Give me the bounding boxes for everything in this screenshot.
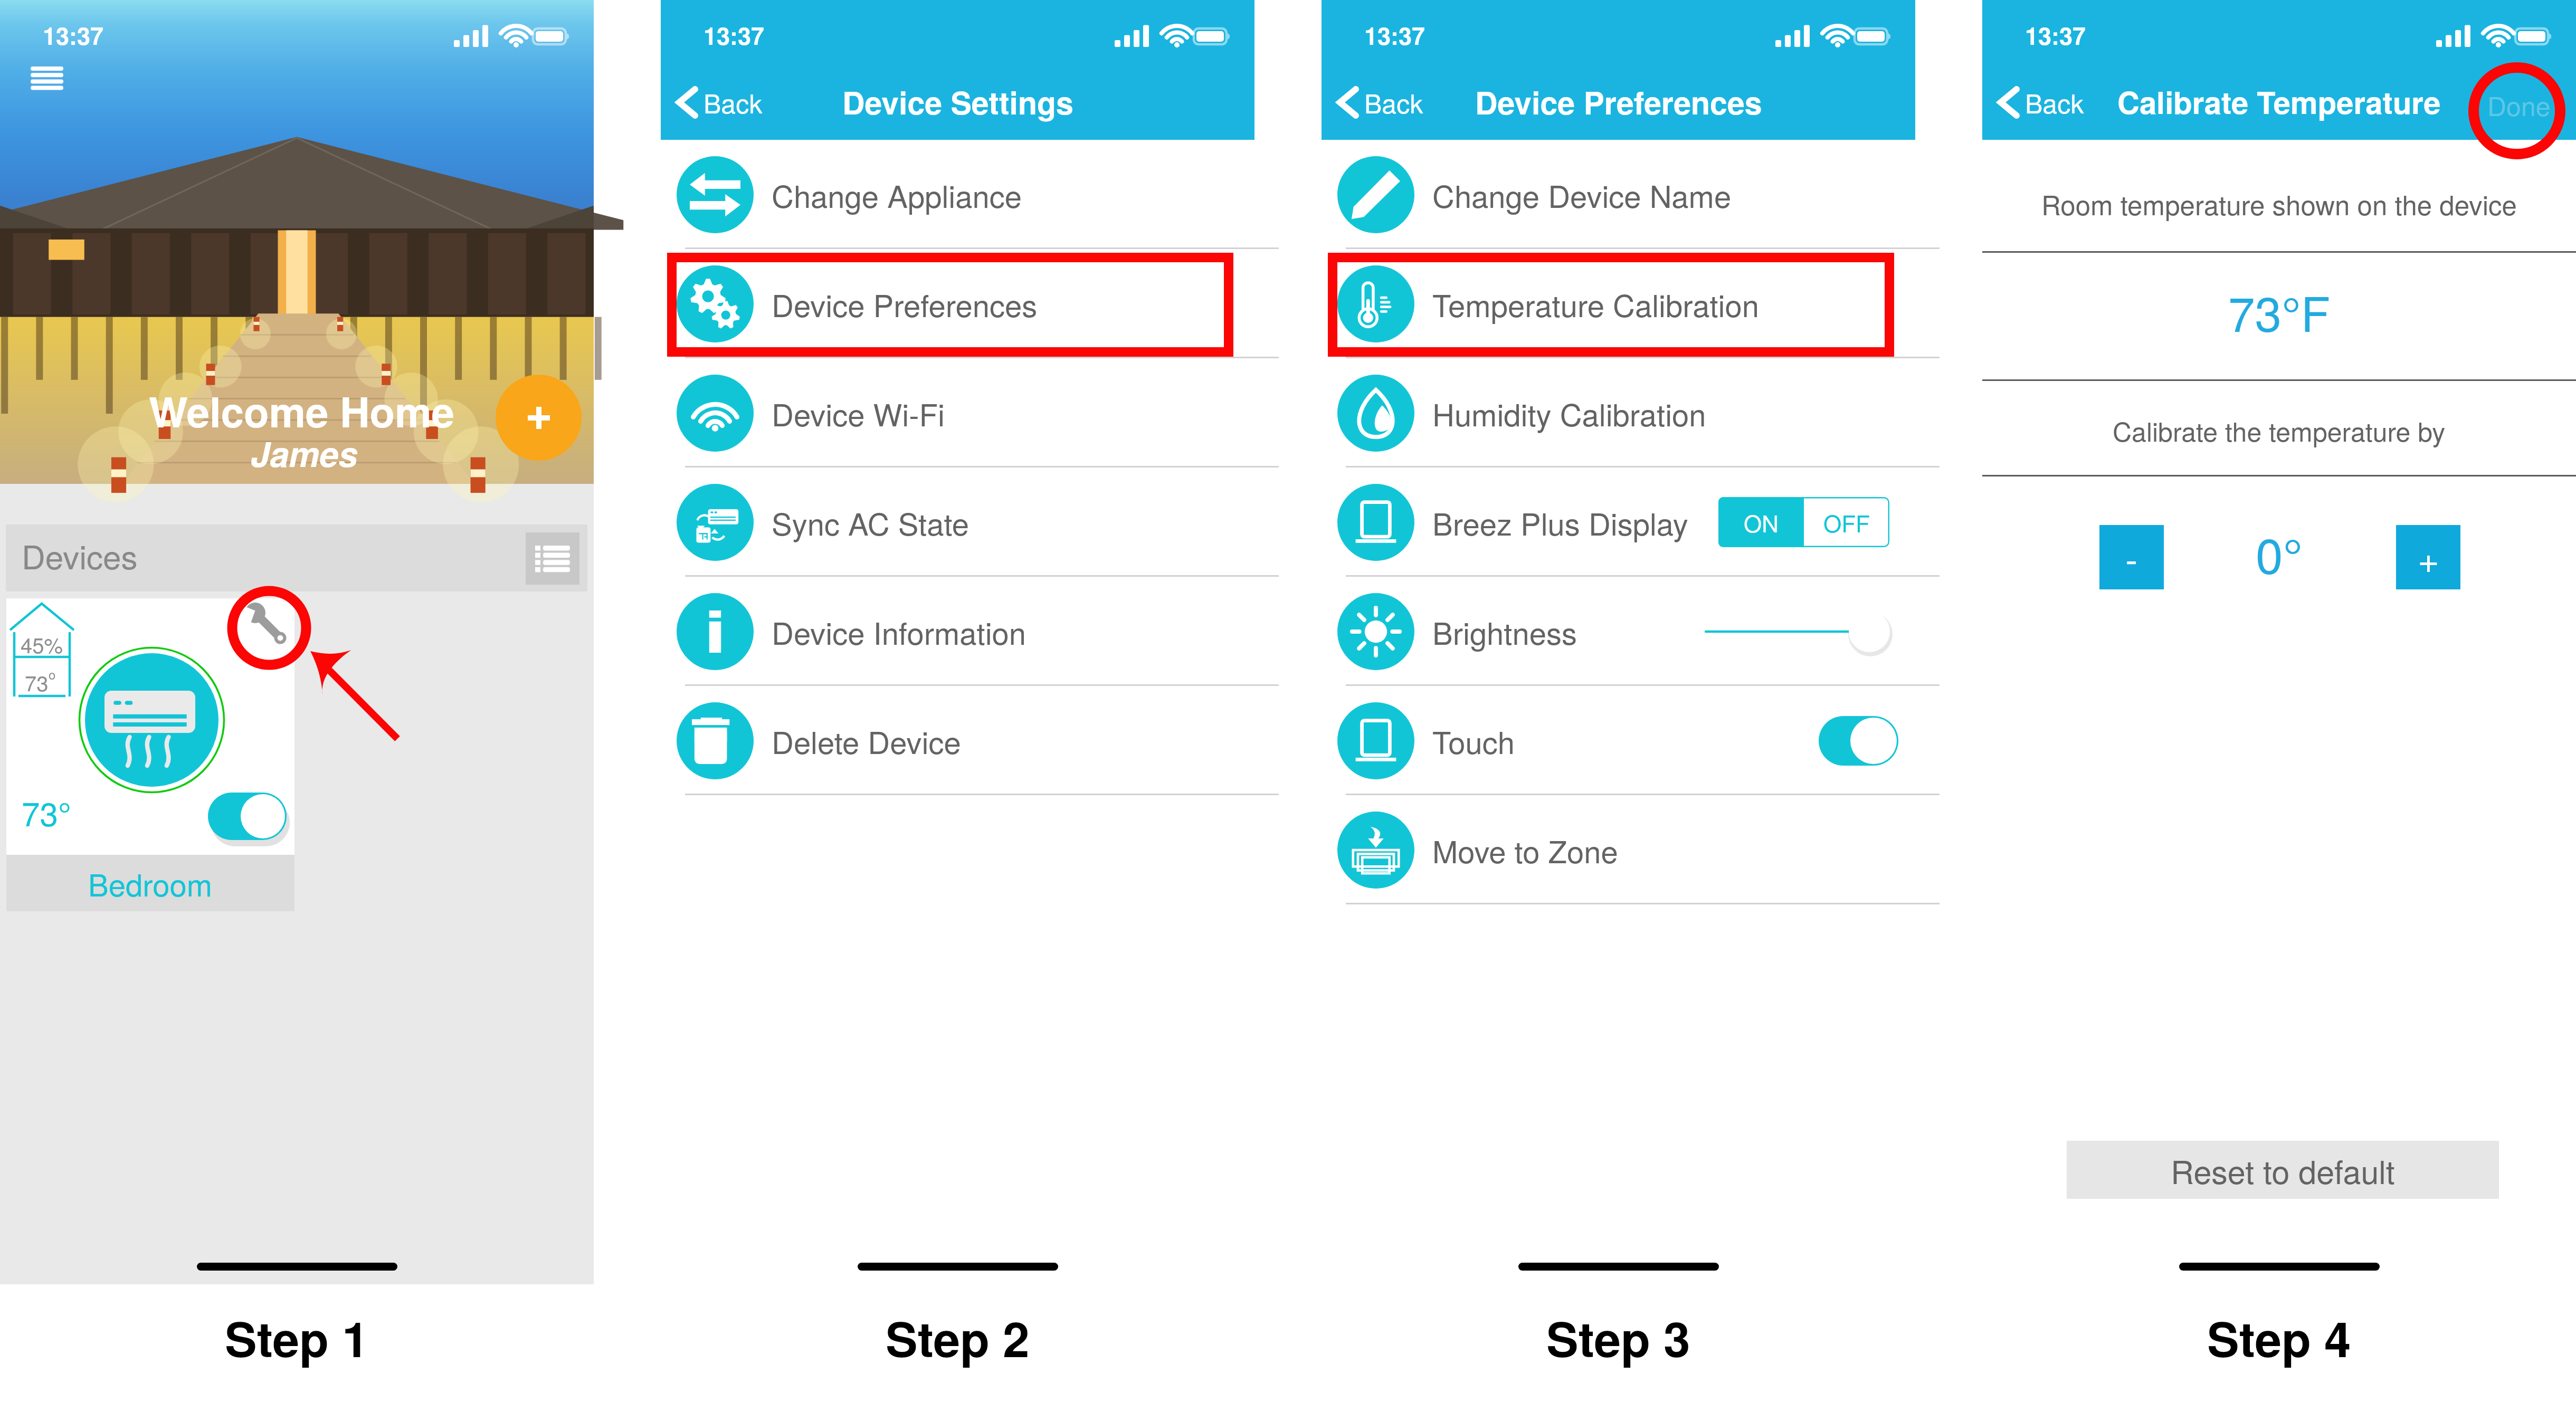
staticText: Change Appliance [772,173,1022,216]
staticText: Welcome Home [149,381,454,440]
staticText: Done [2487,86,2551,124]
staticText: OFF [1823,505,1870,539]
button[interactable]: Breez Plus Display [1322,468,1915,577]
staticText: Device Preferences [772,282,1038,326]
staticText: 73 [25,667,49,693]
button[interactable]: List view [526,532,579,585]
button[interactable]: Change Appliance [661,140,1254,249]
button[interactable]: Touch toggle [1819,716,1898,766]
button[interactable]: Touch [1322,686,1915,795]
button[interactable]: Back [1337,79,1423,126]
staticText: Calibrate Temperature [2117,80,2441,123]
staticText: Step 3 [1546,1303,1690,1372]
button[interactable]: Bedroom [6,855,294,911]
staticText: Move to Zone [1432,828,1618,872]
button[interactable]: Back [676,79,763,126]
staticText: Temperature Calibration [1432,282,1759,326]
button[interactable]: Done [2472,80,2567,130]
staticText: Calibrate the temperature by [2113,412,2446,450]
staticText: Step 2 [886,1303,1030,1372]
staticText: Room temperature shown on the device [2041,184,2517,223]
staticText: Change Device Name [1432,173,1732,216]
staticText: James [251,428,358,478]
staticText: ON [1744,505,1779,539]
other: Menu [31,66,64,91]
staticText: Devices [22,532,138,579]
button[interactable]: Humidity Calibration [1322,358,1915,468]
button[interactable]: Decrease [2099,525,2164,589]
staticText: Device Preferences [1475,80,1762,124]
button[interactable]: ON [1718,497,1889,547]
button[interactable]: Increase [2396,525,2460,589]
staticText: Sync AC State [772,500,969,544]
staticText: Device Settings [842,80,1073,124]
staticText: Brightness [1432,609,1577,653]
button[interactable]: Move to Zone [1322,795,1915,904]
button[interactable]: Add device [496,375,582,461]
staticText: Delete Device [772,719,961,762]
button[interactable]: 45% [6,598,294,855]
staticText: 0° [2256,518,2303,582]
button[interactable]: Delete Device [661,686,1254,795]
button[interactable]: Reset to default [2067,1141,2499,1199]
button[interactable]: Power toggle [208,793,287,840]
staticText: Device Information [772,609,1026,653]
button[interactable]: Device Information [661,577,1254,686]
button[interactable]: Temperature Calibration [1322,249,1915,358]
staticText: Bedroom [88,861,213,905]
staticText: Reset to default [2171,1147,2395,1193]
staticText: 73° [22,789,71,836]
button[interactable]: Device Wi-Fi [661,358,1254,468]
button[interactable]: Sync AC State [661,468,1254,577]
staticText: 45% [21,629,63,655]
staticText: - [2125,531,2138,584]
button[interactable]: Device Preferences [661,249,1254,358]
staticText: 13:37 [43,18,104,52]
staticText: Step 4 [2207,1303,2351,1372]
staticText: 13:37 [1364,18,1425,52]
staticText: 13:37 [2025,18,2086,52]
staticText: + [2418,531,2439,584]
staticText: 73°F [2228,277,2331,346]
button[interactable]: Change Device Name [1322,140,1915,249]
staticText: Step 1 [225,1303,369,1372]
staticText: Back [1364,83,1423,121]
staticText: 13:37 [704,18,765,52]
staticText: Breez Plus Display [1432,500,1688,544]
staticText: Touch [1432,719,1515,762]
button[interactable]: Brightness [1322,577,1915,686]
staticText: Device Wi-Fi [772,391,945,435]
staticText: Humidity Calibration [1432,391,1706,435]
staticText: Back [704,83,763,121]
staticText: o [49,665,56,683]
button[interactable]: Back [1998,79,2084,126]
staticText: Back [2025,83,2084,121]
